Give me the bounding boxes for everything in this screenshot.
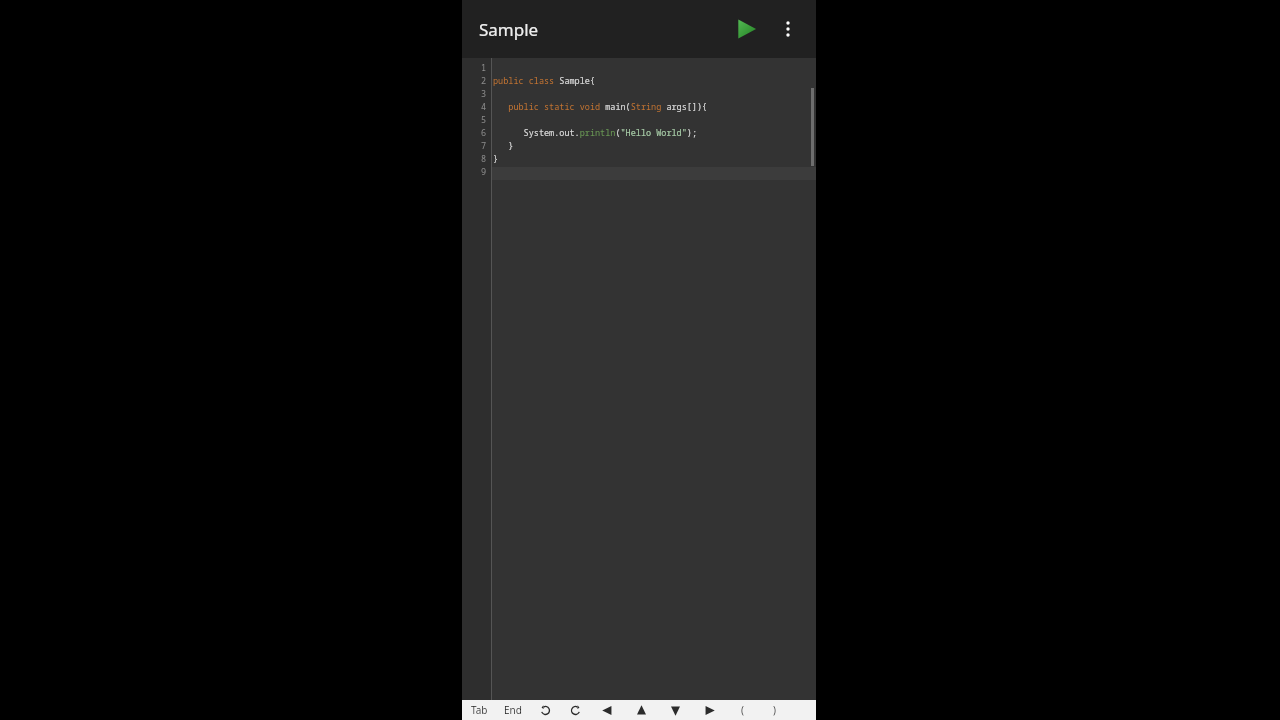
staticText: 7 (481, 140, 487, 152)
staticText: 5 (481, 114, 487, 126)
button[interactable]: More options (768, 9, 808, 49)
staticText: public static void main(String args[]){ (493, 101, 708, 113)
button[interactable]: Right (692, 700, 726, 720)
staticText: } (493, 140, 514, 152)
staticText: ( (741, 703, 744, 717)
staticText: Tab (471, 703, 488, 717)
staticText: End (504, 703, 522, 717)
button[interactable]: Left (590, 700, 624, 720)
staticText: 1 (481, 62, 487, 74)
staticText: System.out.println("Hello World"); (493, 127, 698, 139)
button[interactable]: Undo (530, 700, 560, 720)
button[interactable]: Run (724, 7, 768, 51)
button[interactable]: ) (758, 700, 790, 720)
button[interactable]: Redo (560, 700, 590, 720)
staticText: 3 (481, 88, 487, 100)
button[interactable]: Down (658, 700, 692, 720)
button[interactable]: Up (624, 700, 658, 720)
staticText: 9 (481, 166, 487, 178)
button[interactable]: ( (726, 700, 758, 720)
button[interactable]: End (496, 700, 530, 720)
button[interactable]: Tab (462, 700, 496, 720)
staticText: 6 (481, 127, 487, 139)
staticText: ) (773, 703, 776, 717)
staticText: 4 (481, 101, 487, 113)
staticText: public class Sample{ (493, 75, 596, 87)
staticText: 2 (481, 75, 487, 87)
staticText: } (493, 153, 499, 165)
staticText: 8 (481, 153, 487, 165)
staticText: Sample (479, 18, 539, 41)
